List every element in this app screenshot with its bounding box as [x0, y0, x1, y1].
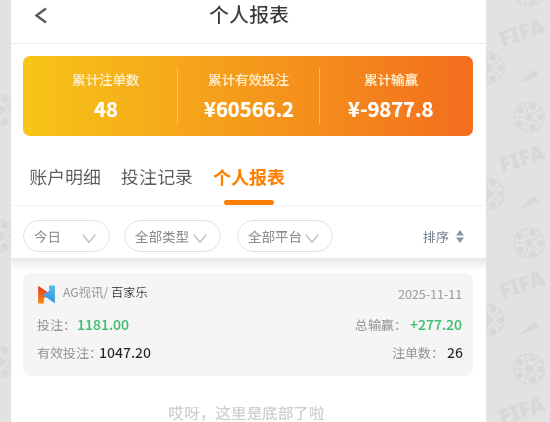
button[interactable]: 全部类型: [124, 220, 221, 252]
staticText: 累计注单数: [72, 69, 140, 89]
staticText: 全部类型: [135, 226, 189, 246]
staticText: 26: [447, 342, 463, 362]
staticText: 百家乐: [111, 283, 148, 301]
button[interactable]: 今日: [23, 220, 110, 252]
staticText: 有效投注：: [37, 343, 103, 362]
button[interactable]: AG视讯/: [23, 273, 473, 376]
button[interactable]: 全部平台: [237, 220, 333, 252]
staticText: ¥60566.2: [204, 94, 294, 123]
staticText: 2025-11-11: [398, 284, 463, 302]
staticText: 累计输赢: [364, 69, 418, 89]
button[interactable]: 投注记录: [111, 155, 203, 205]
staticText: 投注：: [37, 315, 77, 334]
staticText: 个人报表: [213, 163, 285, 189]
staticText: 48: [94, 94, 118, 123]
staticText: 注单数：: [392, 343, 445, 362]
button[interactable]: 排序: [423, 227, 464, 246]
staticText: 1181.00: [77, 314, 130, 334]
staticText: 1047.20: [99, 342, 152, 362]
staticText: 哎呀，这里是底部了啦: [9, 401, 484, 422]
button[interactable]: 个人报表: [203, 155, 295, 205]
staticText: 个人报表: [209, 0, 289, 28]
staticText: 投注记录: [121, 163, 193, 189]
staticText: 排序: [423, 227, 450, 246]
button[interactable]: Back: [20, 0, 62, 35]
staticText: AG视讯/: [63, 283, 111, 301]
staticText: ¥-9877.8: [348, 94, 434, 123]
staticText: 总输赢：: [355, 315, 408, 334]
staticText: 今日: [34, 226, 61, 246]
button[interactable]: 账户明细: [19, 155, 111, 205]
staticText: +277.20: [410, 314, 463, 334]
staticText: 账户明细: [29, 163, 101, 189]
staticText: 全部平台: [248, 226, 302, 246]
staticText: 累计有效投注: [208, 69, 289, 89]
